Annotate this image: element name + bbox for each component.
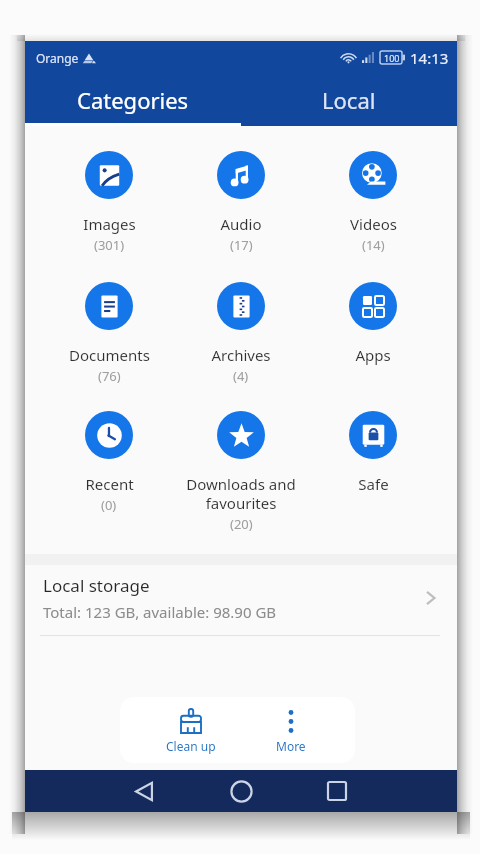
staticText: (4): [233, 367, 249, 385]
button[interactable]: Images: [43, 151, 175, 271]
staticText: Audio: [220, 214, 262, 234]
staticText: Videos: [350, 214, 397, 234]
staticText: Local: [322, 85, 376, 115]
button[interactable]: Safe: [307, 411, 439, 531]
button[interactable]: Archives: [175, 282, 307, 402]
button[interactable]: Audio: [175, 151, 307, 271]
staticText: (17): [230, 236, 253, 254]
staticText: (76): [98, 367, 121, 385]
button[interactable]: Back: [120, 770, 168, 812]
staticText: Downloads and favourites: [186, 474, 296, 513]
staticText: Apps: [355, 345, 391, 365]
staticText: Archives: [211, 345, 271, 365]
staticText: More: [276, 738, 306, 754]
button[interactable]: Videos: [307, 151, 439, 271]
button[interactable]: Apps: [307, 282, 439, 402]
staticText: (20): [230, 515, 253, 531]
button[interactable]: Recent: [43, 411, 175, 531]
staticText: Images: [83, 214, 136, 234]
button[interactable]: Home: [217, 770, 265, 812]
button[interactable]: Local: [241, 74, 457, 126]
button[interactable]: More: [258, 701, 323, 759]
button[interactable]: Recent apps: [313, 770, 361, 812]
button[interactable]: Local storage: [25, 565, 457, 636]
button[interactable]: Downloads and favourites: [175, 411, 307, 531]
button[interactable]: Clean up: [150, 701, 231, 759]
staticText: (301): [94, 236, 125, 254]
staticText: Safe: [358, 474, 389, 494]
staticText: Local storage: [43, 574, 150, 597]
staticText: Categories: [77, 85, 189, 115]
staticText: Total: 123 GB, available: 98.90 GB: [43, 602, 277, 622]
staticText: (14): [362, 236, 385, 254]
staticText: Clean up: [166, 738, 216, 754]
staticText: Orange: [36, 50, 79, 66]
button[interactable]: Categories: [25, 74, 241, 126]
button[interactable]: Documents: [43, 282, 175, 402]
staticText: (0): [101, 496, 117, 514]
staticText: Recent: [85, 474, 134, 494]
staticText: 100: [384, 52, 400, 64]
staticText: Documents: [69, 345, 150, 365]
staticText: 14:13: [410, 48, 449, 68]
